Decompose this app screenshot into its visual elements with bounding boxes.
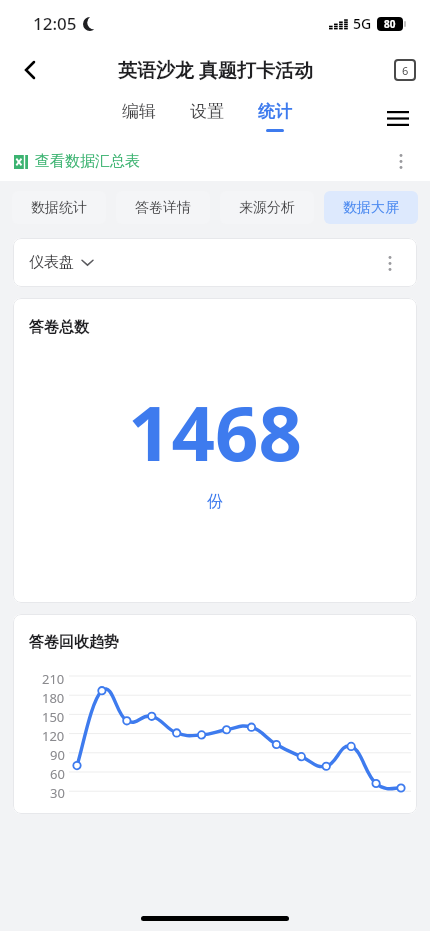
button[interactable]: 统计	[252, 98, 298, 135]
button[interactable]: 答卷详情	[116, 191, 210, 224]
staticText: 答卷回收趋势	[29, 633, 119, 652]
staticText: 来源分析	[239, 199, 295, 217]
staticText: 80	[384, 17, 396, 31]
staticText: 180	[42, 689, 65, 707]
staticText: 60	[50, 765, 65, 783]
staticText: 1468	[128, 380, 302, 484]
button[interactable]: Menu	[378, 98, 418, 138]
staticText: 12:05	[33, 12, 77, 35]
staticText: 编辑	[122, 101, 156, 122]
button[interactable]: 仪表盘	[29, 253, 93, 272]
staticText: 仪表盘	[29, 253, 74, 272]
staticText: 查看数据汇总表	[35, 152, 140, 171]
staticText: 答卷详情	[135, 199, 191, 217]
button[interactable]: More options	[384, 144, 418, 178]
button[interactable]: 设置	[184, 98, 230, 135]
staticText: 设置	[190, 101, 224, 122]
staticText: 30	[50, 784, 65, 802]
staticText: 120	[42, 727, 65, 745]
button[interactable]: 查看数据汇总表	[14, 152, 140, 171]
button[interactable]: 来源分析	[220, 191, 314, 224]
button[interactable]: Back	[8, 48, 52, 92]
staticText: 150	[42, 708, 65, 726]
staticText: 6	[402, 63, 409, 78]
staticText: 210	[42, 670, 65, 688]
button[interactable]: Pages 6	[394, 59, 416, 81]
staticText: 份	[207, 492, 223, 512]
button[interactable]: 答卷回收趋势	[13, 614, 417, 814]
staticText: 5G	[353, 14, 372, 33]
staticText: 数据统计	[31, 199, 87, 217]
button[interactable]: 数据大屏	[324, 191, 418, 224]
staticText: 统计	[258, 101, 292, 122]
button[interactable]: 答卷总数	[13, 298, 417, 603]
staticText: 数据大屏	[343, 199, 399, 217]
button[interactable]: 编辑	[116, 98, 162, 135]
staticText: 英语沙龙 真题打卡活动	[118, 57, 313, 83]
button[interactable]: 数据统计	[12, 191, 106, 224]
button[interactable]: Dashboard options	[373, 246, 407, 280]
staticText: 90	[50, 746, 65, 764]
staticText: 答卷总数	[29, 318, 89, 337]
